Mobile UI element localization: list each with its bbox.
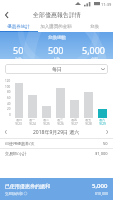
staticText: 週三 — [57, 118, 63, 122]
staticText: 兌換 — [90, 24, 99, 30]
button[interactable]: 兌換 — [75, 22, 113, 31]
button[interactable]: 優惠券統計 — [0, 22, 37, 31]
staticText: 50 — [103, 141, 108, 146]
button[interactable]: Back — [0, 8, 14, 22]
staticText: 60 — [7, 96, 11, 100]
staticText: 每日 — [52, 66, 62, 72]
staticText: 金額 — [91, 57, 98, 59]
staticText: 80 — [7, 90, 11, 94]
button[interactable]: Previous day — [0, 126, 12, 138]
staticText: 週四 — [71, 118, 77, 122]
staticText: 9/25 — [43, 122, 50, 126]
staticText: 交易額/小計 — [5, 151, 95, 156]
staticText: 9/28 — [85, 122, 92, 126]
staticText: 交易額的和 — [5, 192, 23, 196]
staticText: 人數 — [53, 57, 60, 59]
staticText: 週日 — [16, 118, 22, 122]
button[interactable]: 已使用優惠券的總和 — [0, 178, 113, 200]
staticText: $10,000 — [95, 191, 108, 196]
button[interactable]: 每日 — [5, 64, 108, 74]
staticText: 全部優惠報告詳情 — [33, 11, 81, 19]
staticText: 2018年9月29日 週六 — [33, 129, 80, 136]
staticText: 9/29 — [99, 122, 106, 126]
staticText: 120 — [5, 79, 11, 83]
staticText: 加入購買的金額 — [40, 24, 72, 30]
staticText: 優惠券統計 — [7, 24, 30, 30]
button[interactable]: 加入購買的金額 — [37, 22, 75, 31]
staticText: 9/23 — [15, 122, 22, 126]
staticText: 40 — [7, 102, 11, 106]
staticText: 11:39 — [101, 2, 112, 7]
staticText: 9/24 — [29, 122, 36, 126]
staticText: 週二 — [43, 118, 49, 122]
staticText: 次數 — [15, 57, 22, 59]
staticText: 500 — [48, 44, 64, 56]
button[interactable]: 已使用優惠券/次 — [0, 139, 113, 148]
staticText: 週一 — [29, 118, 35, 122]
staticText: 9/26 — [57, 122, 64, 126]
staticText: 0 — [9, 113, 11, 117]
staticText: 100 — [5, 85, 11, 89]
staticText: 已使用優惠券的總和 — [5, 183, 92, 189]
staticText: 兌換總數 — [48, 35, 66, 41]
staticText: 已使用優惠券/次 — [5, 141, 103, 146]
button[interactable]: 交易額/小計 — [0, 149, 113, 158]
staticText: 5,000 — [82, 44, 106, 56]
staticText: 週五 — [85, 118, 91, 122]
staticText: $1,000 — [95, 151, 108, 156]
staticText: 5,000 — [92, 182, 108, 190]
staticText: 9/27 — [71, 122, 78, 126]
staticText: 週六 — [99, 118, 105, 122]
button[interactable]: Next day — [101, 126, 113, 138]
staticText: 20 — [7, 107, 11, 111]
staticText: 50 — [13, 44, 24, 56]
